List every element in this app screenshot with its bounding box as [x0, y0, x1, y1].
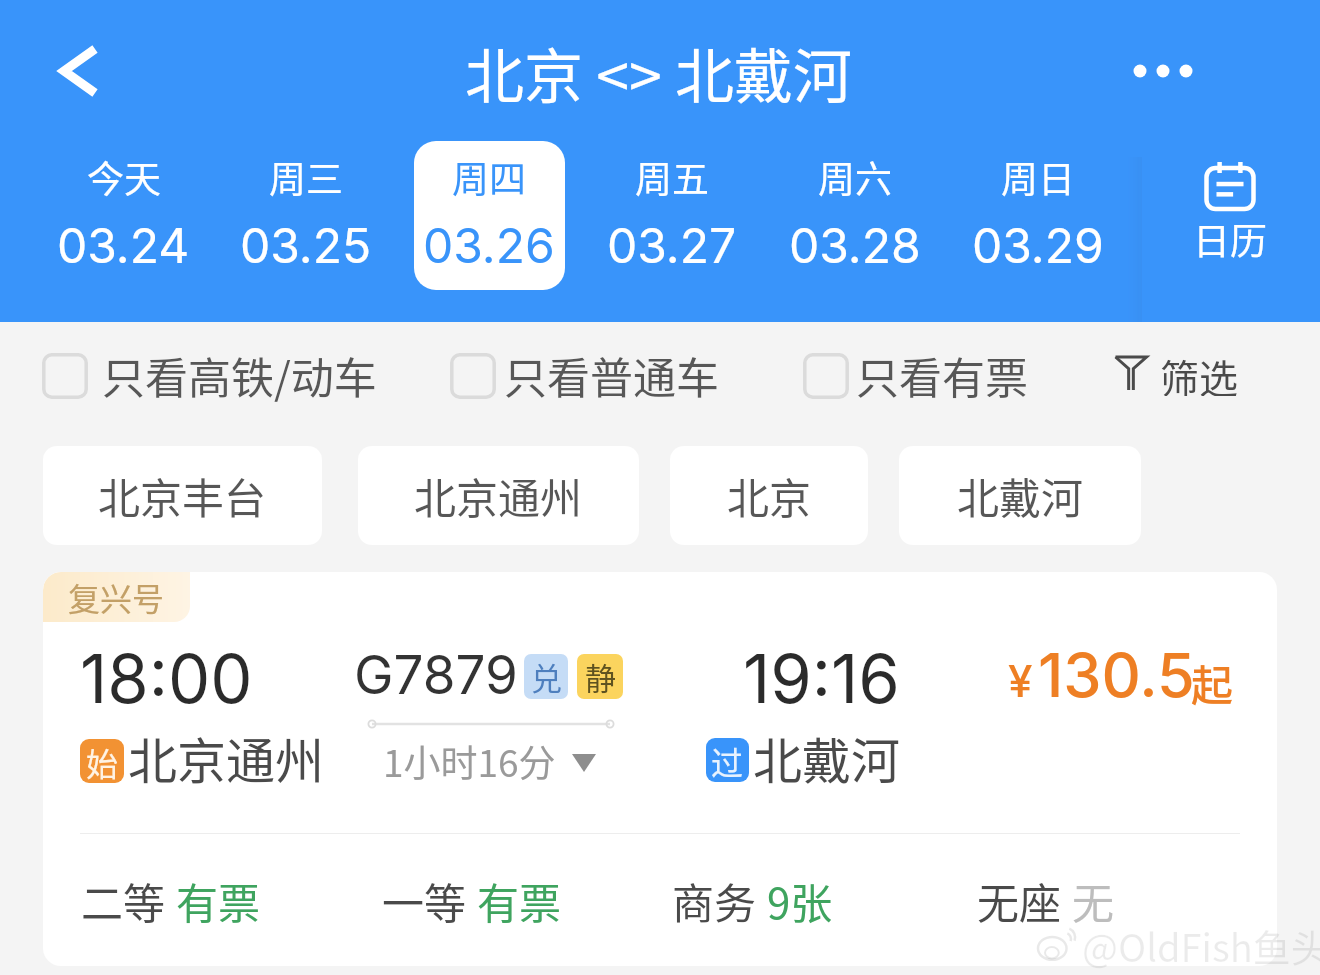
- staticText: 静: [585, 654, 616, 699]
- staticText: 一等: [382, 870, 467, 926]
- button[interactable]: 商务: [672, 870, 833, 926]
- staticText: ¥: [1008, 654, 1033, 707]
- staticText: 北京通州: [414, 465, 583, 526]
- button[interactable]: 只看有票: [803, 347, 1128, 405]
- staticText: 03.24: [57, 216, 190, 274]
- button[interactable]: 筛选: [1113, 348, 1239, 396]
- staticText: 北京: [727, 465, 812, 526]
- staticText: 只看普通车: [504, 344, 719, 402]
- staticText: 北戴河: [957, 465, 1084, 526]
- staticText: 北戴河: [753, 722, 901, 793]
- staticText: 1小时16分: [383, 734, 556, 788]
- staticText: 周四: [452, 150, 526, 204]
- staticText: 只看有票: [856, 344, 1028, 402]
- staticText: 03.25: [240, 216, 372, 274]
- button[interactable]: Calendar: [1144, 118, 1315, 310]
- staticText: 始: [86, 739, 119, 783]
- staticText: 北京通州: [128, 722, 325, 793]
- button[interactable]: More options: [1120, 38, 1206, 104]
- staticText: 有票: [176, 870, 261, 926]
- button[interactable]: 周六: [764, 137, 946, 286]
- staticText: 筛选: [1160, 348, 1239, 396]
- button[interactable]: 北京通州: [358, 446, 639, 545]
- button[interactable]: 二等: [81, 870, 261, 926]
- staticText: 北京丰台: [98, 465, 267, 526]
- button[interactable]: 只看普通车: [450, 347, 776, 405]
- staticText: 今天: [87, 150, 161, 204]
- staticText: 周日: [1001, 150, 1075, 204]
- button[interactable]: 只看高铁/动车: [42, 347, 374, 405]
- button[interactable]: 周四: [398, 137, 580, 286]
- button[interactable]: Back: [35, 30, 119, 114]
- staticText: 周六: [818, 150, 892, 204]
- button[interactable]: 周三: [215, 137, 397, 286]
- staticText: 只看高铁/动车: [102, 344, 377, 402]
- button[interactable]: 一等: [382, 870, 562, 926]
- button[interactable]: 北戴河: [899, 446, 1141, 545]
- button[interactable]: 北京: [670, 446, 868, 545]
- button[interactable]: 周日: [947, 137, 1129, 286]
- button[interactable]: 北京丰台: [43, 446, 322, 545]
- staticText: 18:00: [80, 638, 253, 719]
- staticText: 9张: [767, 870, 833, 926]
- staticText: 二等: [81, 870, 166, 926]
- staticText: 03.27: [607, 216, 737, 274]
- staticText: 过: [711, 738, 744, 782]
- button[interactable]: 无座: [977, 870, 1115, 926]
- staticText: 周三: [269, 150, 343, 204]
- staticText: 起: [1191, 652, 1234, 713]
- staticText: 日历: [1193, 212, 1267, 266]
- button[interactable]: 复兴号: [43, 572, 1277, 966]
- staticText: 北京 <> 北戴河: [465, 30, 852, 106]
- staticText: 03.29: [972, 216, 1104, 274]
- staticText: 19:16: [743, 638, 900, 719]
- staticText: @OldFish鱼头: [1082, 918, 1320, 973]
- staticText: 商务: [672, 870, 757, 926]
- staticText: 无: [1072, 870, 1115, 926]
- staticText: 130.5: [1038, 638, 1195, 712]
- staticText: 复兴号: [68, 574, 165, 620]
- staticText: 有票: [477, 870, 562, 926]
- button[interactable]: 周五: [581, 137, 763, 286]
- staticText: 03.26: [423, 216, 555, 274]
- staticText: G7879: [354, 643, 518, 707]
- staticText: 无座: [977, 870, 1062, 926]
- staticText: 兑: [531, 654, 562, 699]
- staticText: 周五: [635, 150, 709, 204]
- button[interactable]: 今天: [32, 137, 214, 286]
- staticText: 03.28: [789, 216, 921, 274]
